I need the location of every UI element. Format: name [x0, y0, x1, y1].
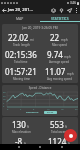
staticText: 11.07: [45, 66, 66, 77]
button[interactable]: TIME: [44, 111, 57, 114]
staticText: 30: [3, 91, 6, 94]
button[interactable]: Navigate up: [0, 6, 8, 14]
staticText: Max elevation: [12, 130, 31, 134]
staticText: -8: [15, 136, 23, 147]
staticText: DISTANCE: [26, 112, 39, 113]
button[interactable]: Recents: [59, 144, 65, 150]
staticText: 01:57:21: [5, 66, 37, 77]
staticText: mph: [61, 38, 68, 42]
staticText: ft: [68, 142, 71, 146]
staticText: ft: [27, 125, 30, 129]
staticText: 12: [47, 108, 50, 111]
staticText: Jan 20, 201...: [8, 7, 33, 13]
staticText: Avg moving speed: [47, 77, 72, 81]
staticText: Moving time: [13, 77, 30, 81]
staticText: 02:15:36: [5, 49, 37, 60]
button[interactable]: More options: [73, 7, 80, 14]
staticText: 22.02: [8, 32, 29, 43]
staticText: 0: [3, 105, 5, 108]
staticText: 9.74: [47, 49, 63, 60]
button[interactable]: STATISTICS: [40, 14, 80, 22]
button[interactable]: Jan 20, 2019 3:26:05 PM: [2, 24, 78, 83]
staticText: Track length: [13, 43, 30, 47]
button[interactable]: Home: [37, 144, 43, 150]
staticText: Max speed: [52, 43, 67, 47]
button[interactable]: Map layers: [49, 6, 57, 14]
staticText: Total descent: [50, 147, 68, 148]
staticText: mph: [67, 72, 74, 76]
button[interactable]: Record track: [64, 129, 77, 142]
staticText: Speed - Distance: [2, 86, 78, 90]
staticText: 20: [75, 108, 78, 111]
staticText: 8: [33, 108, 35, 111]
staticText: Total ascent: [51, 130, 68, 134]
staticText: mi: [30, 38, 34, 42]
button[interactable]: My location: [57, 6, 65, 14]
staticText: 4: [20, 108, 22, 111]
staticText: mph: [64, 55, 71, 59]
staticText: ft: [65, 125, 68, 129]
staticText: Average speed: [49, 60, 70, 64]
staticText: Total time: [14, 60, 28, 64]
button[interactable]: MAP: [0, 14, 40, 22]
staticText: ft: [24, 142, 27, 146]
staticText: 553: [50, 119, 64, 130]
staticText: Jan 20, 2019 3:26:05 PM: [2, 26, 78, 30]
staticText: 22: [3, 95, 6, 98]
staticText: 22: [50, 32, 60, 43]
staticText: 7: [3, 102, 5, 105]
button[interactable]: Speed - Distance: [2, 85, 78, 116]
staticText: 3:26: [70, 1, 76, 5]
staticText: 130: [12, 119, 26, 130]
staticText: 15: [3, 98, 6, 101]
button[interactable]: 130: [2, 117, 78, 150]
staticText: MAP: [16, 16, 24, 21]
staticText: 1124: [48, 136, 67, 147]
staticText: 0: [7, 108, 9, 111]
staticText: STATISTICS: [51, 16, 69, 21]
button[interactable]: Back: [16, 144, 22, 150]
button[interactable]: DISTANCE: [24, 111, 41, 114]
staticText: TIME: [47, 112, 54, 113]
staticText: 16: [61, 108, 64, 111]
button[interactable]: Share: [65, 6, 73, 14]
staticText: Min elevation: [12, 147, 31, 148]
